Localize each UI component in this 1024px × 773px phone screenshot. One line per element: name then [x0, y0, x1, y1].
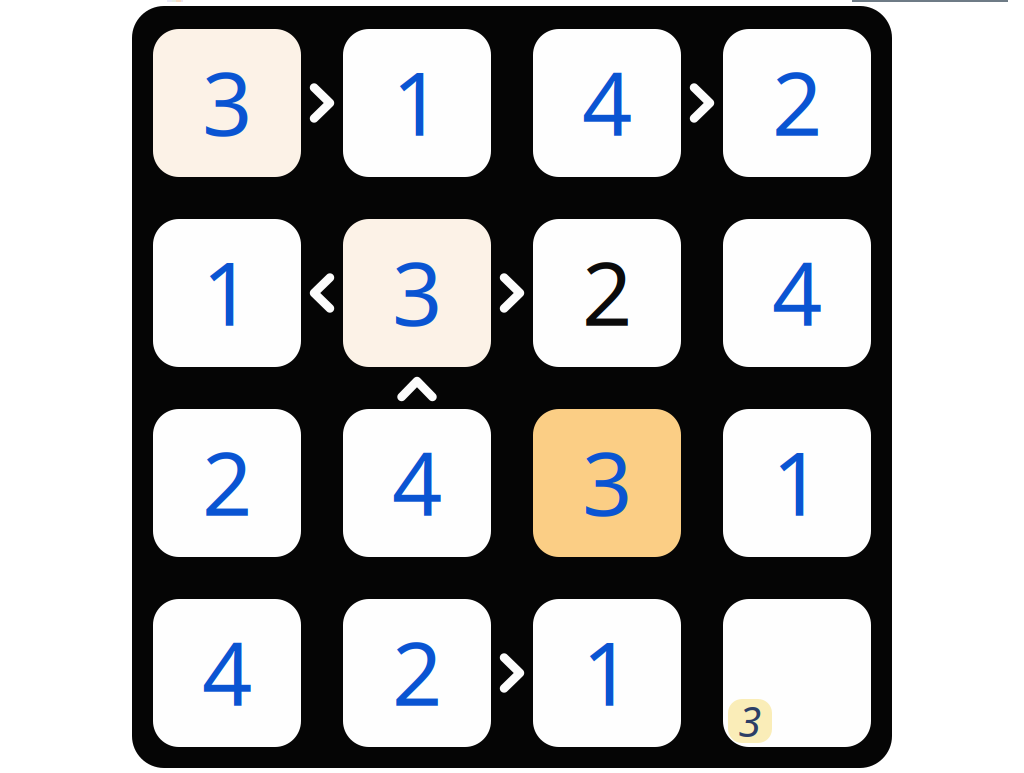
staticText: 3: [738, 694, 761, 748]
staticText: 1: [202, 233, 252, 350]
staticText: 4: [772, 233, 822, 350]
staticText: 2: [582, 233, 632, 350]
button[interactable]: Cell, 4: [153, 599, 301, 747]
button[interactable]: Cell, 2: [153, 409, 301, 557]
staticText: 4: [202, 613, 252, 730]
button[interactable]: Cell, 3: [343, 219, 491, 367]
staticText: 3: [202, 43, 252, 160]
staticText: 2: [202, 423, 252, 540]
button[interactable]: Cell, 1: [533, 599, 681, 747]
button[interactable]: Empty cell, note 3: [723, 599, 871, 747]
button[interactable]: Cell, 1: [343, 29, 491, 177]
button[interactable]: Cell, 3: [533, 409, 681, 557]
staticText: 3: [582, 423, 632, 540]
staticText: 4: [582, 43, 632, 160]
staticText: 2: [392, 613, 442, 730]
button[interactable]: Cell, 2: [723, 29, 871, 177]
button[interactable]: Cell, 3: [153, 29, 301, 177]
staticText: 1: [582, 613, 632, 730]
button[interactable]: Cell, 1: [153, 219, 301, 367]
button[interactable]: Cell, 2: [343, 599, 491, 747]
button[interactable]: Cell, 1: [723, 409, 871, 557]
button[interactable]: Cell, 4: [533, 29, 681, 177]
button[interactable]: Cell, 4: [343, 409, 491, 557]
staticText: 4: [392, 423, 442, 540]
staticText: 2: [772, 43, 822, 160]
staticText: 1: [392, 43, 442, 160]
staticText: 3: [392, 233, 442, 350]
button[interactable]: Cell, 4: [723, 219, 871, 367]
button[interactable]: Cell, 2: [533, 219, 681, 367]
staticText: 1: [772, 423, 822, 540]
